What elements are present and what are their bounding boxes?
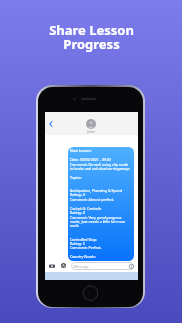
button[interactable]: Contact [86,119,96,129]
button[interactable]: Camera [49,263,55,269]
button[interactable] [71,262,134,270]
button[interactable]: Send [129,264,134,269]
button[interactable] [68,147,134,261]
staticText: Share Lesson Progress [49,21,134,53]
button[interactable]: Back [47,120,55,128]
button[interactable]: App Store [61,263,66,268]
